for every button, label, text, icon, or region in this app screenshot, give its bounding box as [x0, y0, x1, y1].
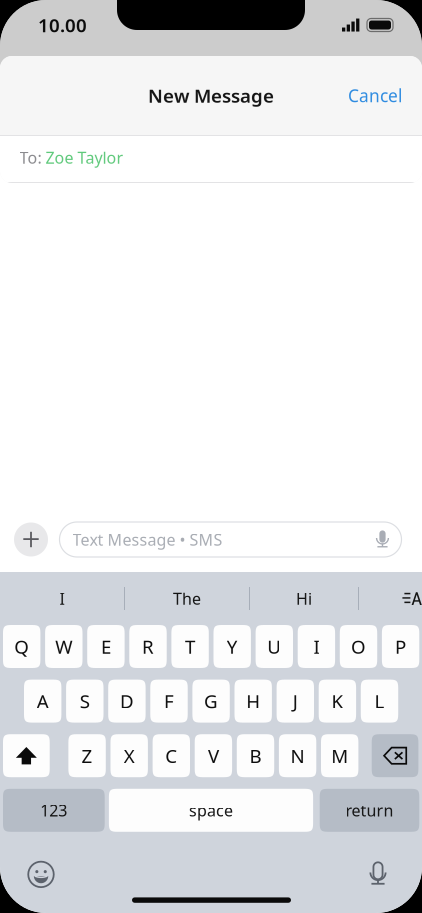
button[interactable]: X	[110, 734, 148, 777]
button[interactable]: R	[129, 625, 167, 668]
staticText: U	[267, 634, 281, 659]
button[interactable]: J	[277, 680, 314, 723]
button[interactable]: Q	[3, 625, 40, 668]
button[interactable]: Text formatting	[359, 572, 422, 625]
button[interactable]: Y	[213, 625, 251, 668]
staticText: Text Message • SMS	[72, 529, 222, 550]
staticText: R	[142, 634, 154, 659]
staticText: The	[173, 588, 201, 609]
staticText: N	[291, 743, 305, 768]
button[interactable]: space	[109, 789, 313, 832]
button[interactable]: Add attachment	[14, 522, 48, 556]
staticText: 123	[40, 800, 67, 821]
staticText: S	[80, 689, 90, 713]
staticText: K	[331, 689, 343, 713]
button[interactable]: C	[153, 734, 190, 777]
button[interactable]: N	[279, 734, 316, 777]
staticText: H	[246, 689, 260, 713]
staticText: I	[313, 634, 319, 659]
button[interactable]: Text Message • SMS	[59, 522, 401, 557]
button[interactable]: D	[108, 680, 146, 723]
staticText: F	[164, 689, 174, 713]
staticText: G	[204, 689, 218, 713]
staticText: P	[395, 634, 406, 659]
staticText: return	[345, 800, 393, 821]
staticText: X	[124, 743, 135, 768]
staticText: V	[208, 743, 219, 768]
button[interactable]: M	[321, 734, 358, 777]
button[interactable]: P	[382, 625, 419, 668]
staticText: space	[189, 800, 233, 821]
button[interactable]: I	[298, 625, 335, 668]
staticText: Cancel	[348, 84, 402, 107]
staticText: B	[249, 743, 261, 768]
staticText: Z	[82, 743, 93, 768]
staticText: C	[165, 743, 177, 768]
button[interactable]: Dictation	[358, 854, 398, 894]
button[interactable]: B	[237, 734, 274, 777]
button[interactable]: K	[319, 680, 356, 723]
button[interactable]: W	[45, 625, 82, 668]
staticText: I	[59, 588, 64, 609]
button[interactable]: U	[256, 625, 293, 668]
button[interactable]: S	[66, 680, 103, 723]
staticText: O	[351, 634, 366, 659]
button[interactable]: Delete	[372, 734, 418, 777]
staticText: Zoe Taylor	[45, 147, 123, 168]
button[interactable]: L	[361, 680, 398, 723]
staticText: 10.00	[38, 13, 87, 37]
staticText: E	[101, 634, 111, 659]
button[interactable]: H	[234, 680, 272, 723]
staticText: A	[37, 689, 49, 713]
button[interactable]: A	[24, 680, 61, 723]
staticText: J	[293, 689, 298, 713]
staticText: Y	[227, 634, 238, 659]
button[interactable]: E	[87, 625, 125, 668]
staticText: To:	[19, 147, 45, 168]
button[interactable]: I	[0, 572, 124, 625]
button[interactable]: Emoji	[21, 854, 61, 894]
button[interactable]: F	[150, 680, 188, 723]
staticText: Q	[14, 634, 29, 659]
button[interactable]: 123	[3, 789, 105, 832]
button[interactable]: T	[171, 625, 209, 668]
button[interactable]: V	[195, 734, 232, 777]
button[interactable]: return	[320, 789, 419, 832]
staticText: W	[55, 634, 72, 659]
button[interactable]: The	[125, 572, 249, 625]
staticText: T	[185, 634, 195, 659]
button[interactable]: G	[192, 680, 230, 723]
button[interactable]: O	[340, 625, 377, 668]
staticText: New Message	[148, 83, 274, 108]
staticText: D	[120, 689, 134, 713]
staticText: Hi	[296, 588, 312, 609]
button[interactable]: Hi	[250, 572, 358, 625]
button[interactable]: Z	[68, 734, 106, 777]
button[interactable]: Cancel	[348, 73, 422, 117]
staticText: M	[331, 743, 348, 768]
staticText: L	[374, 689, 384, 713]
button[interactable]: Shift	[3, 734, 50, 777]
